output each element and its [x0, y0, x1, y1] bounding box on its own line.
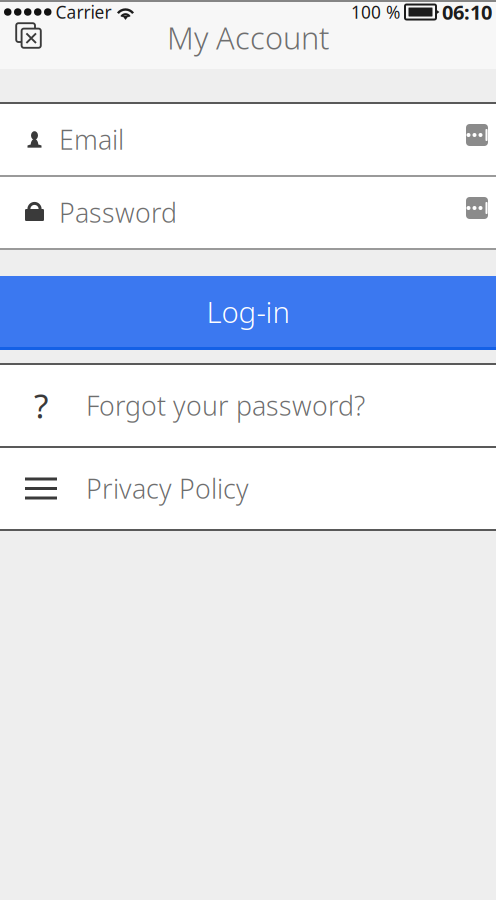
button[interactable]: Close — [0, 22, 42, 69]
staticText: Email — [59, 122, 124, 157]
button[interactable]: Log-in — [0, 276, 496, 347]
staticText: Password — [59, 195, 177, 230]
staticText: My Account — [167, 17, 329, 58]
staticText: Forgot your password? — [86, 388, 365, 423]
staticText: ? — [34, 383, 48, 428]
button[interactable]: Privacy Policy — [0, 448, 496, 529]
staticText: Log-in — [206, 292, 289, 331]
button[interactable]: ? — [0, 365, 496, 446]
staticText: Privacy Policy — [86, 471, 249, 506]
button[interactable]: Email — [0, 104, 496, 175]
staticText: 100 % — [351, 0, 400, 23]
staticText: Carrier — [55, 0, 111, 23]
staticText: 06:10 — [442, 0, 492, 25]
button[interactable]: Password — [0, 177, 496, 248]
